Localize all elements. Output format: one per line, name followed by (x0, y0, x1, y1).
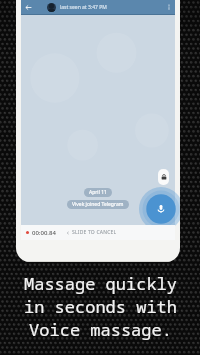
button[interactable]: More options (163, 1, 175, 13)
staticText: Voice massage. (29, 318, 172, 341)
button[interactable]: Back (21, 0, 35, 14)
staticText: April 11 (89, 189, 107, 196)
staticText: in seconds with (24, 295, 177, 318)
staticText: Vivek joined Telegram (72, 201, 124, 208)
staticText: last seen at 3:47 PM (60, 4, 107, 11)
button[interactable]: Lock recording (158, 169, 169, 185)
staticText: Massage quickly (24, 272, 177, 295)
button[interactable]: Record voice message (139, 187, 180, 231)
button[interactable]: Profile photo (47, 3, 56, 12)
staticText: SLIDE TO CANCEL (72, 229, 117, 236)
staticText: 00:00.84 (32, 229, 56, 237)
